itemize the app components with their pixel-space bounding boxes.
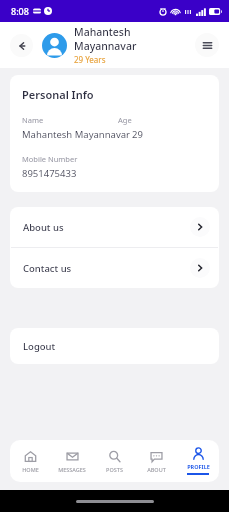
staticText: Mahantesh Mayannavar <box>74 25 191 53</box>
staticText: 29 <box>132 128 143 141</box>
button[interactable]: HOME <box>10 440 51 482</box>
staticText: Contact us <box>23 262 190 275</box>
button[interactable]: Menu <box>195 33 219 57</box>
staticText: 8951475433 <box>22 167 77 180</box>
button[interactable]: ABOUT <box>135 440 177 482</box>
button[interactable]: Back <box>10 34 33 57</box>
button[interactable]: MESSAGES <box>51 440 93 482</box>
staticText: Personal Info <box>22 87 94 102</box>
staticText: MESSAGES <box>58 466 86 473</box>
staticText: POSTS <box>106 466 123 473</box>
button[interactable]: Logout <box>10 328 219 364</box>
staticText: 8:08 <box>11 5 29 17</box>
staticText: Mahantesh Mayannavar <box>22 128 130 141</box>
button[interactable]: Contact us <box>10 248 219 288</box>
staticText: Mobile Number <box>22 154 78 164</box>
staticText: About us <box>23 221 190 234</box>
staticText: Age <box>118 115 132 125</box>
staticText: 29 Years <box>74 54 106 65</box>
button[interactable]: PROFILE <box>177 440 219 482</box>
staticText: Logout <box>23 340 56 353</box>
staticText: HOME <box>22 466 39 473</box>
button[interactable]: About us <box>10 207 219 247</box>
staticText: PROFILE <box>187 463 210 470</box>
button[interactable]: POSTS <box>93 440 135 482</box>
staticText: Name <box>22 115 118 125</box>
staticText: ABOUT <box>147 466 166 473</box>
